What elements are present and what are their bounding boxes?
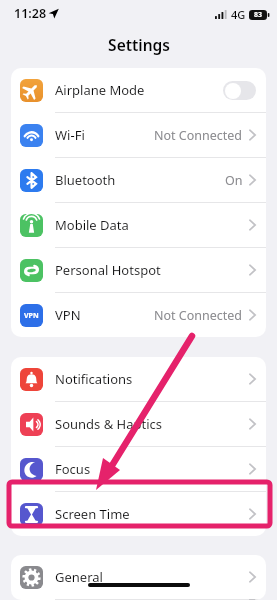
staticText: Personal Hotspot [55, 261, 249, 279]
button[interactable]: Mobile Data [11, 203, 266, 247]
button[interactable]: Screen Time [11, 492, 266, 536]
staticText: General [55, 568, 249, 586]
button[interactable]: Bluetooth [11, 158, 266, 202]
button[interactable]: Focus [11, 447, 266, 491]
staticText: VPN [24, 311, 39, 321]
button[interactable]: Notifications [11, 357, 266, 401]
button[interactable]: Airplane Mode toggle [223, 81, 256, 100]
staticText: Focus [55, 460, 249, 478]
staticText: Settings [108, 34, 170, 55]
staticText: Airplane Mode [55, 81, 223, 99]
button[interactable]: General [11, 555, 266, 599]
staticText: 4G [231, 7, 246, 22]
staticText: Not Connected [154, 307, 243, 324]
staticText: VPN [55, 306, 154, 324]
button[interactable]: VPN [11, 293, 266, 337]
button[interactable]: Wi-Fi [11, 113, 266, 157]
staticText: On [225, 172, 243, 189]
staticText: 11:28 [14, 5, 47, 22]
button[interactable]: Airplane Mode [11, 68, 266, 112]
staticText: Sounds & Haptics [55, 415, 249, 433]
staticText: 83 [254, 10, 263, 20]
button[interactable]: Sounds & Haptics [11, 402, 266, 446]
staticText: Notifications [55, 370, 249, 388]
staticText: Wi-Fi [55, 126, 154, 144]
staticText: Bluetooth [55, 171, 225, 189]
button[interactable]: Personal Hotspot [11, 248, 266, 292]
staticText: Screen Time [55, 505, 249, 523]
staticText: Not Connected [154, 127, 243, 144]
staticText: Mobile Data [55, 216, 249, 234]
